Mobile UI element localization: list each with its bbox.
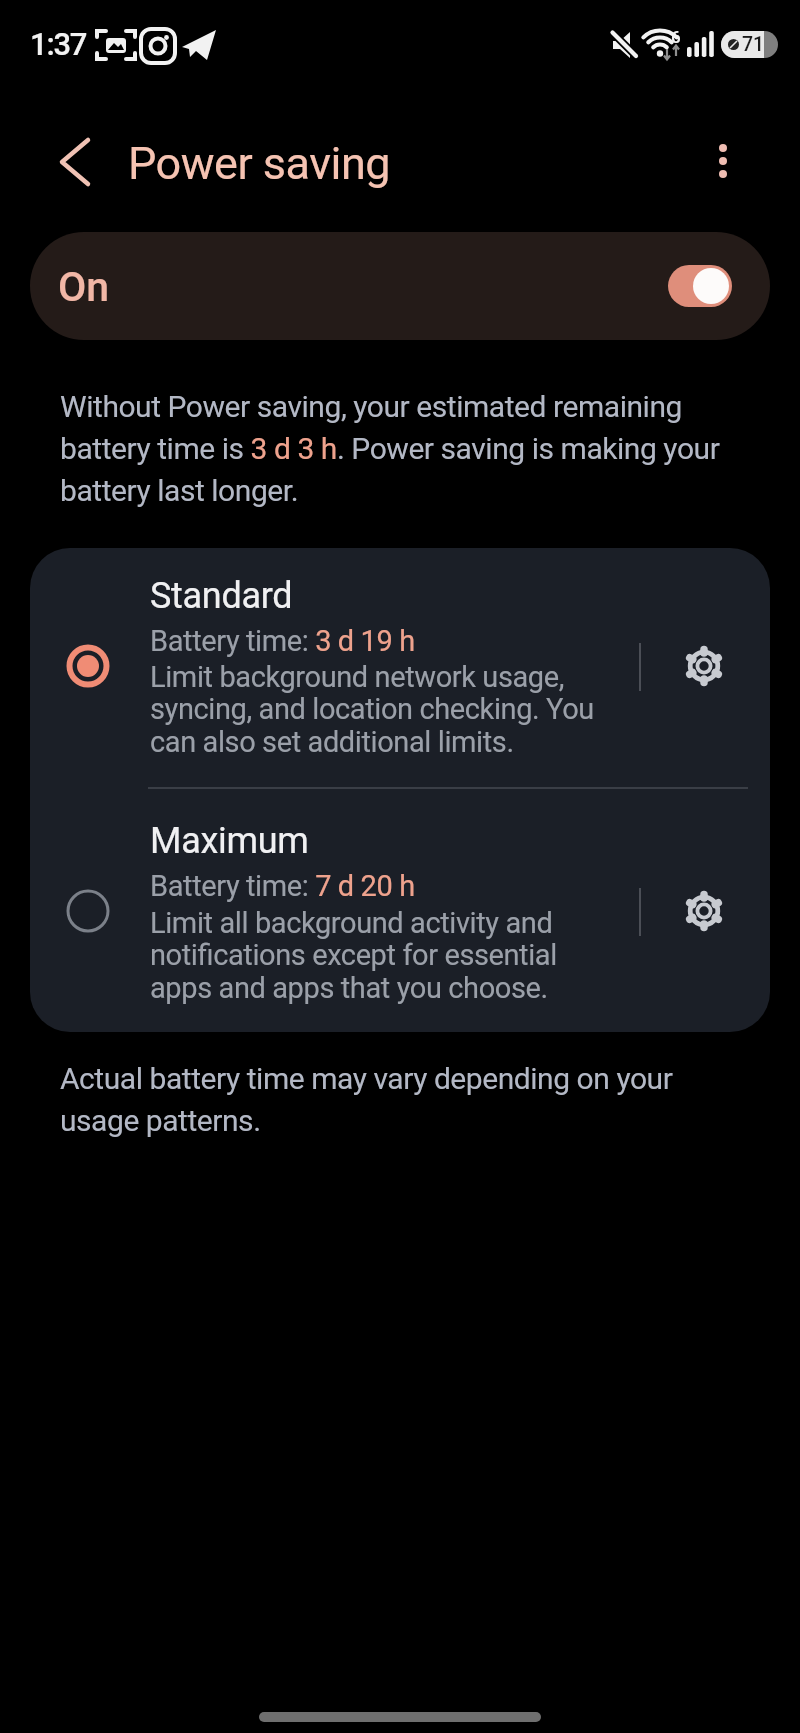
button[interactable]: On [30, 232, 770, 340]
staticText: syncing, and location checking. You [150, 692, 594, 726]
staticText: can also set additional limits. [150, 725, 514, 759]
staticText: 6 [671, 27, 681, 47]
staticText: notifications except for essential [150, 938, 557, 972]
staticText: Actual battery time may vary depending o… [60, 1061, 673, 1096]
staticText: Battery time: 7 d 20 h [150, 869, 415, 903]
button[interactable] [30, 548, 630, 788]
staticText: Standard [150, 575, 293, 617]
staticText: usage patterns. [60, 1103, 261, 1138]
button[interactable] [30, 793, 630, 1032]
staticText: apps and apps that you choose. [150, 971, 548, 1005]
button[interactable] [676, 883, 732, 939]
button[interactable] [48, 134, 104, 190]
staticText: battery time is 3 d 3 h. Power saving is… [60, 431, 720, 466]
staticText: 1:37 [30, 26, 87, 62]
button[interactable] [668, 265, 732, 307]
button[interactable] [699, 137, 747, 185]
staticText: battery last longer. [60, 473, 299, 508]
staticText: Limit background network usage, [150, 660, 565, 694]
staticText: On [58, 263, 110, 311]
staticText: Without Power saving, your estimated rem… [60, 389, 682, 424]
button[interactable] [676, 638, 732, 694]
staticText: 71 [742, 33, 765, 56]
staticText: Limit all background activity and [150, 906, 553, 940]
staticText: Maximum [150, 820, 309, 862]
staticText: Power saving [128, 137, 391, 190]
staticText: Battery time: 3 d 19 h [150, 624, 415, 658]
